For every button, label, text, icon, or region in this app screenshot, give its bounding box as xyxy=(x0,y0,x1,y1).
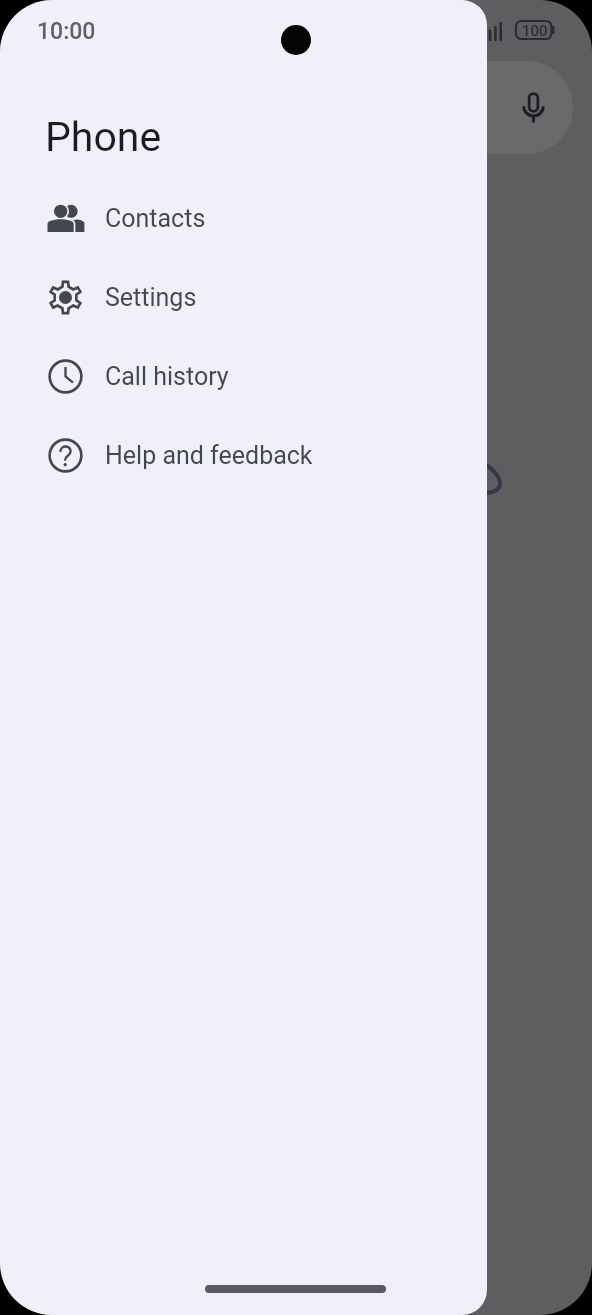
staticText: Contacts xyxy=(105,204,206,233)
staticText: Call history xyxy=(105,362,229,391)
staticText: Phone xyxy=(45,113,162,161)
staticText: 10:00 xyxy=(37,18,96,45)
button[interactable]: Call history xyxy=(0,337,487,416)
staticText: 100 xyxy=(522,22,548,40)
button[interactable]: Voice search xyxy=(514,89,553,128)
button[interactable]: Help and feedback xyxy=(0,416,487,495)
button[interactable]: Contacts xyxy=(0,179,487,258)
staticText: Help and feedback xyxy=(105,441,313,470)
staticText: Settings xyxy=(105,283,197,312)
button[interactable]: Settings xyxy=(0,258,487,337)
